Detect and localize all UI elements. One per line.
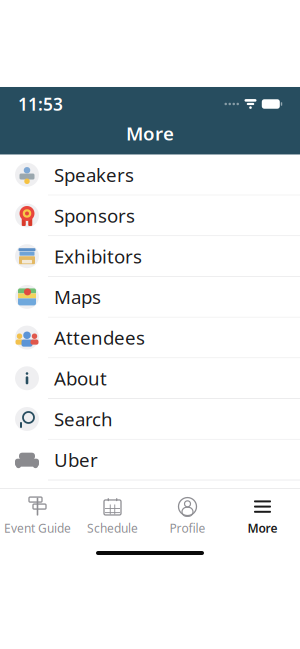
button[interactable]: About bbox=[0, 358, 300, 399]
button[interactable]: Speakers bbox=[0, 155, 300, 195]
button[interactable]: Attendees bbox=[0, 318, 300, 358]
staticText: Exhibitors bbox=[54, 244, 142, 269]
button[interactable]: Search bbox=[0, 399, 300, 440]
button[interactable]: Event Guide bbox=[0, 489, 75, 542]
button[interactable]: Profile bbox=[150, 489, 225, 542]
staticText: Event Guide bbox=[4, 520, 71, 536]
staticText: More bbox=[247, 520, 277, 536]
staticText: Speakers bbox=[54, 162, 134, 187]
staticText: Search bbox=[54, 407, 113, 431]
staticText: 11:53 bbox=[18, 92, 63, 115]
staticText: More bbox=[126, 121, 174, 146]
staticText: About bbox=[54, 366, 107, 391]
button[interactable]: Exhibitors bbox=[0, 236, 300, 277]
button[interactable]: Uber bbox=[0, 440, 300, 480]
button[interactable]: Maps bbox=[0, 277, 300, 318]
staticText: Maps bbox=[54, 284, 101, 309]
staticText: Sponsors bbox=[54, 203, 135, 228]
button[interactable]: More bbox=[225, 489, 300, 542]
button[interactable]: Sponsors bbox=[0, 195, 300, 236]
staticText: Uber bbox=[54, 447, 98, 472]
staticText: Schedule bbox=[87, 520, 138, 536]
staticText: Profile bbox=[169, 520, 205, 536]
button[interactable]: Schedule bbox=[75, 489, 150, 542]
staticText: Attendees bbox=[54, 325, 145, 350]
